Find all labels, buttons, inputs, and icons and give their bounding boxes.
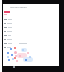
button[interactable]: [4, 27, 12, 31]
button[interactable]: [4, 23, 12, 27]
button[interactable]: [4, 19, 12, 23]
staticText: Monthly Report: [10, 6, 27, 9]
button[interactable]: [4, 39, 12, 43]
button[interactable]: [4, 35, 11, 39]
button[interactable]: [4, 47, 11, 51]
button[interactable]: [4, 43, 12, 47]
button[interactable]: Navigation bar: [3, 66, 59, 72]
button[interactable]: [4, 31, 12, 35]
